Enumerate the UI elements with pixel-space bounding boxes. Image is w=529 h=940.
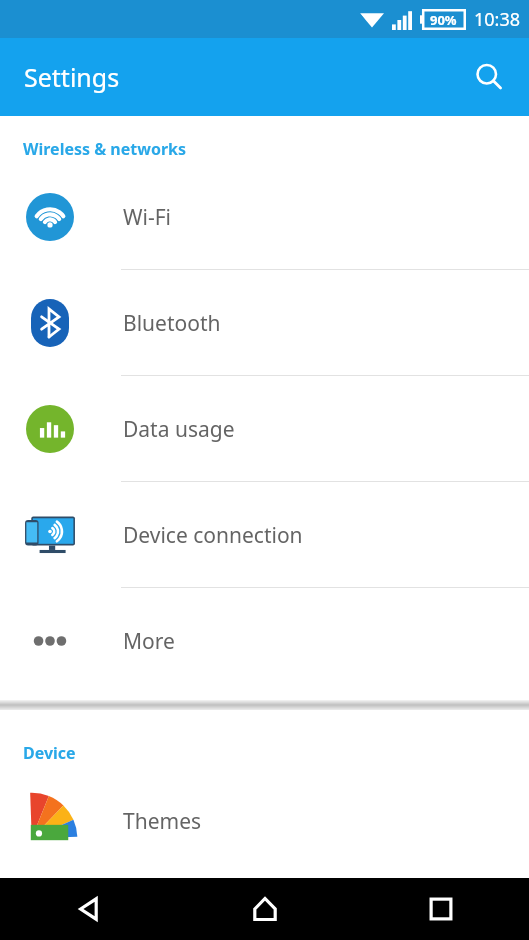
button[interactable]: Wi-Fi xyxy=(0,164,529,270)
button[interactable]: Home xyxy=(177,878,353,940)
staticText: Wi-Fi xyxy=(123,203,172,232)
staticText: Data usage xyxy=(123,415,235,444)
staticText: 90% xyxy=(430,11,457,29)
staticText: Settings xyxy=(24,60,120,94)
button[interactable]: Back xyxy=(0,878,177,940)
button[interactable]: Bluetooth xyxy=(0,270,529,376)
button[interactable]: Device connection xyxy=(0,482,529,588)
staticText: 10:38 xyxy=(474,7,521,32)
staticText: Themes xyxy=(123,807,202,836)
staticText: Device connection xyxy=(123,521,303,550)
button[interactable]: Data usage xyxy=(0,376,529,482)
button[interactable]: Recent apps xyxy=(353,878,529,940)
button[interactable]: More xyxy=(0,588,529,694)
staticText: More xyxy=(123,627,175,656)
staticText: Bluetooth xyxy=(123,309,221,338)
staticText: Wireless & networks xyxy=(23,138,187,160)
staticText: Device xyxy=(23,742,76,764)
button[interactable]: Themes xyxy=(0,768,529,874)
button[interactable]: Search xyxy=(463,51,515,103)
